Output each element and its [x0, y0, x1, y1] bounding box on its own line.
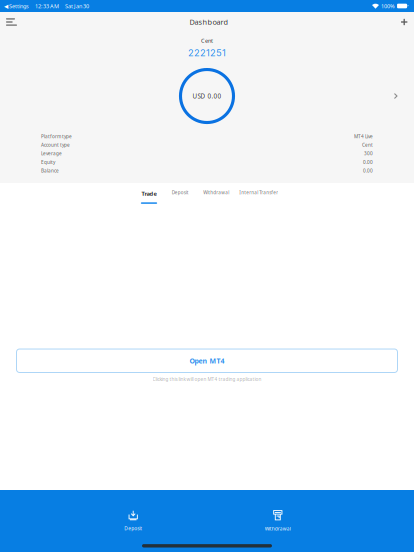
staticText: Cent [362, 142, 373, 148]
staticText: Internal Transfer [239, 189, 278, 196]
staticText: Open MT4 [189, 356, 224, 365]
button[interactable]: Internal Transfer [239, 183, 278, 207]
staticText: Account type [41, 142, 70, 148]
staticText: 300 [364, 150, 373, 157]
button[interactable]: Deposit [172, 183, 189, 207]
staticText: 0.00 [363, 167, 373, 174]
staticText: Deposit [172, 189, 189, 196]
staticText: Balance [41, 167, 59, 174]
staticText: USD 0.00 [192, 92, 221, 100]
staticText: Cent [201, 37, 213, 44]
staticText: 12:33 AM [35, 2, 59, 10]
button[interactable]: Next account [386, 85, 414, 107]
button[interactable]: Open MT4 [16, 349, 397, 372]
button[interactable]: Add account [393, 12, 414, 32]
staticText: Deposit [124, 525, 142, 532]
staticText: Dashboard [189, 17, 228, 27]
button[interactable]: Withdrawal [203, 183, 229, 207]
staticText: MT4 Live [354, 133, 373, 139]
staticText: Withdrawal [265, 525, 291, 532]
button[interactable]: Trade [141, 183, 157, 207]
staticText: Withdrawal [203, 189, 229, 196]
staticText: Platform type [41, 133, 72, 139]
staticText: 2221251 [188, 47, 226, 58]
staticText: Equity [41, 159, 55, 165]
button[interactable]: Withdrawal [223, 510, 333, 532]
staticText: ◀ Settings [4, 2, 29, 10]
staticText: Clicking this link will open MT4 trading… [152, 376, 261, 382]
staticText: Trade [141, 189, 156, 197]
staticText: 0.00 [363, 159, 373, 165]
button[interactable]: Deposit [78, 510, 188, 532]
staticText: Sat Jan 30 [65, 2, 89, 10]
staticText: Leverage [41, 150, 62, 157]
staticText: 100% [381, 2, 395, 10]
button[interactable]: Menu [0, 12, 25, 32]
